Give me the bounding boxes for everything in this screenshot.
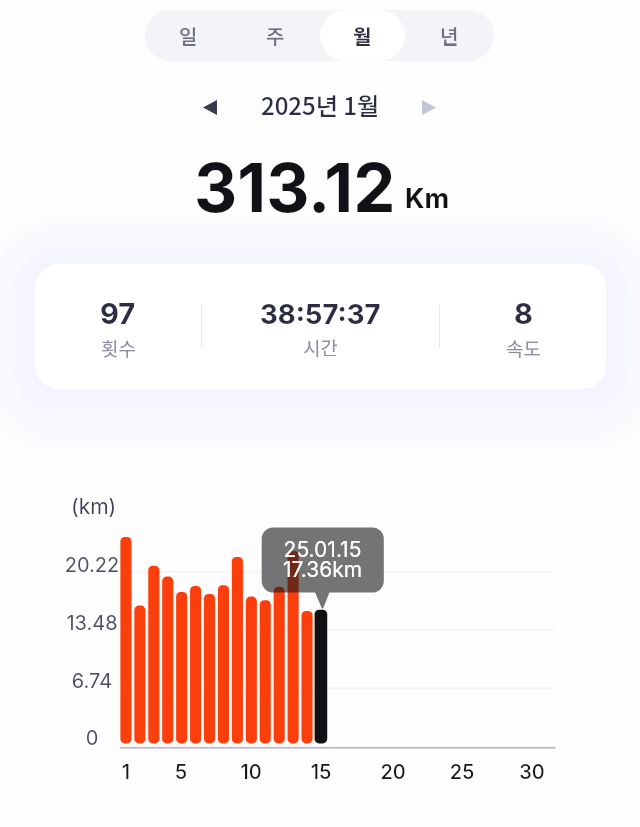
staticText: 1 (101, 760, 151, 784)
staticText: 25.01.15 (261, 537, 384, 562)
staticText: 8 (514, 296, 533, 331)
staticText: 25 (437, 760, 487, 784)
button[interactable]: 8 (440, 296, 606, 362)
button[interactable]: Next month (413, 86, 449, 122)
button[interactable]: Previous month (191, 86, 227, 122)
staticText: 속도 (506, 334, 541, 362)
button[interactable]: 월 (320, 10, 405, 61)
staticText: 38:57:37 (260, 297, 381, 330)
staticText: 횟수 (101, 334, 136, 362)
staticText: 17.36km (261, 557, 384, 582)
staticText: 10 (226, 760, 276, 784)
button[interactable]: 38:57:37 (202, 297, 439, 361)
staticText: 시간 (303, 333, 338, 361)
staticText: 0 (47, 726, 137, 750)
staticText: 15 (296, 760, 346, 784)
button[interactable]: 년 (407, 10, 492, 61)
staticText: 일 (179, 21, 198, 50)
staticText: Km (405, 182, 450, 215)
button[interactable]: 일 (146, 10, 231, 61)
staticText: 97 (100, 296, 136, 331)
staticText: 13.48 (47, 611, 137, 635)
staticText: 주 (266, 21, 285, 50)
staticText: 313.12 (194, 147, 396, 228)
staticText: 5 (156, 760, 206, 784)
staticText: 20 (368, 760, 418, 784)
staticText: 6.74 (47, 669, 137, 693)
staticText: 20.22 (47, 553, 137, 577)
staticText: 월 (353, 21, 372, 50)
staticText: 30 (507, 760, 557, 784)
staticText: 2025년 1월 (261, 87, 379, 122)
button[interactable]: 97 (35, 296, 201, 362)
button[interactable]: 주 (233, 10, 318, 61)
staticText: 년 (440, 21, 459, 50)
staticText: (km) (71, 494, 117, 519)
